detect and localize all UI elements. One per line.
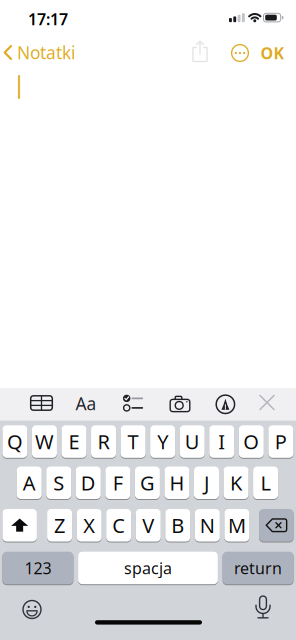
button[interactable]: Space bbox=[78, 551, 218, 585]
button[interactable]: Delete bbox=[259, 508, 294, 542]
button[interactable]: U bbox=[180, 425, 205, 458]
button[interactable]: O bbox=[239, 425, 264, 458]
button[interactable]: Notatki bbox=[3, 36, 113, 68]
staticText: spacja bbox=[124, 557, 172, 578]
button[interactable]: X bbox=[77, 508, 102, 542]
button[interactable]: W bbox=[32, 425, 57, 458]
button[interactable]: L bbox=[253, 466, 278, 499]
button[interactable]: F bbox=[105, 466, 130, 499]
button[interactable]: Camera bbox=[168, 395, 192, 413]
staticText: T bbox=[128, 428, 139, 455]
staticText: F bbox=[113, 469, 123, 496]
button[interactable]: E bbox=[61, 425, 86, 458]
button[interactable]: Numbers bbox=[2, 551, 73, 585]
button[interactable]: S bbox=[46, 466, 71, 499]
button[interactable]: I bbox=[209, 425, 234, 458]
staticText: G bbox=[140, 469, 155, 496]
staticText: B bbox=[171, 512, 184, 539]
staticText: N bbox=[200, 512, 215, 539]
staticText: W bbox=[35, 428, 54, 455]
staticText: K bbox=[230, 469, 242, 496]
button[interactable]: Shift bbox=[2, 508, 37, 542]
button[interactable]: N bbox=[195, 508, 220, 542]
button[interactable]: B bbox=[165, 508, 190, 542]
button[interactable]: A bbox=[17, 466, 42, 499]
button[interactable]: Table bbox=[29, 394, 53, 412]
staticText: 17:17 bbox=[28, 8, 68, 30]
button[interactable]: Share bbox=[188, 40, 212, 66]
button[interactable]: G bbox=[135, 466, 160, 499]
button[interactable]: Y bbox=[150, 425, 175, 458]
staticText: S bbox=[53, 469, 64, 496]
button[interactable]: K bbox=[223, 466, 248, 499]
staticText: OK bbox=[260, 42, 284, 64]
button[interactable]: Checklist bbox=[120, 394, 144, 412]
staticText: Q bbox=[7, 428, 23, 455]
staticText: J bbox=[204, 469, 209, 496]
button[interactable]: Markup bbox=[214, 393, 236, 415]
staticText: I bbox=[218, 428, 225, 455]
staticText: Notatki bbox=[17, 41, 75, 64]
staticText: L bbox=[261, 469, 271, 496]
button[interactable]: P bbox=[268, 425, 293, 458]
staticText: C bbox=[112, 512, 125, 539]
button[interactable]: M bbox=[224, 508, 249, 542]
button[interactable]: More bbox=[228, 41, 252, 65]
button[interactable]: Dictation bbox=[255, 595, 271, 621]
staticText: Y bbox=[157, 428, 168, 455]
staticText: A bbox=[23, 469, 36, 496]
staticText: O bbox=[243, 428, 259, 455]
button[interactable]: Return bbox=[223, 551, 294, 585]
button[interactable]: J bbox=[194, 466, 219, 499]
button[interactable]: Z bbox=[47, 508, 72, 542]
staticText: R bbox=[98, 428, 110, 455]
staticText: 123 bbox=[24, 557, 51, 578]
staticText: E bbox=[68, 428, 79, 455]
staticText: U bbox=[185, 428, 200, 455]
staticText: Z bbox=[54, 512, 65, 539]
staticText: return bbox=[234, 557, 282, 578]
button[interactable]: Format bbox=[75, 392, 96, 415]
button[interactable]: H bbox=[164, 466, 189, 499]
staticText: Aa bbox=[75, 392, 96, 415]
staticText: H bbox=[169, 469, 184, 496]
button[interactable]: V bbox=[136, 508, 161, 542]
button[interactable]: Dismiss bbox=[259, 394, 275, 410]
button[interactable]: Emoji bbox=[22, 599, 42, 619]
staticText: P bbox=[275, 428, 287, 455]
button[interactable]: OK bbox=[260, 42, 284, 64]
button[interactable]: D bbox=[76, 466, 101, 499]
button[interactable]: Q bbox=[2, 425, 27, 458]
staticText: X bbox=[83, 512, 95, 539]
button[interactable]: T bbox=[121, 425, 146, 458]
staticText: D bbox=[81, 469, 96, 496]
button[interactable]: C bbox=[106, 508, 131, 542]
staticText: M bbox=[228, 512, 246, 539]
button[interactable]: R bbox=[91, 425, 116, 458]
staticText: V bbox=[142, 512, 154, 539]
